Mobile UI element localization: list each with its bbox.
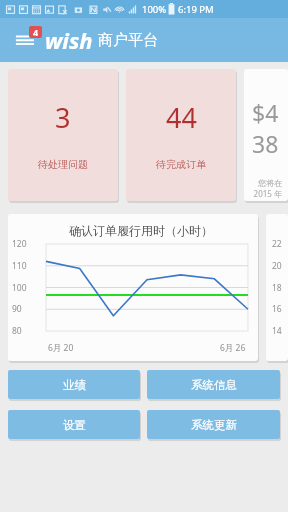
button[interactable]: 3	[8, 69, 118, 201]
staticText: 业绩	[63, 378, 86, 392]
button[interactable]: 设置	[8, 410, 140, 439]
staticText: 44	[166, 99, 197, 136]
staticText: 22	[272, 238, 282, 250]
staticText: 100%	[142, 3, 167, 16]
staticText: 20	[272, 260, 282, 272]
staticText: 3	[55, 99, 71, 136]
staticText: 90	[12, 303, 38, 315]
staticText: 80	[12, 325, 38, 337]
staticText: 系统更新	[191, 418, 237, 432]
staticText: 100	[12, 282, 38, 294]
button[interactable]: 确认订单履行用时（小时）	[8, 214, 258, 361]
staticText: 系统信息	[191, 378, 237, 392]
button[interactable]: Menu	[9, 23, 43, 57]
staticText: 4	[33, 26, 39, 38]
staticText: 18	[272, 282, 282, 294]
staticText: 110	[12, 260, 38, 272]
staticText: 您将在 2015 年 7 月 1 日收到下一笔付款	[252, 177, 282, 201]
staticText: wish	[45, 25, 93, 55]
staticText: 待完成订单	[156, 158, 206, 171]
staticText: 待处理问题	[38, 158, 88, 171]
staticText: 6月 20	[48, 342, 74, 354]
staticText: $438	[252, 97, 282, 159]
button[interactable]: 22	[266, 214, 288, 361]
staticText: 确认订单履行用时（小时）	[69, 223, 213, 238]
staticText: 16	[272, 303, 282, 315]
button[interactable]: 44	[126, 69, 236, 201]
staticText: 120	[12, 238, 38, 250]
button[interactable]: $438	[244, 69, 288, 201]
staticText: 商户平台	[98, 31, 158, 50]
button[interactable]: 业绩	[8, 370, 140, 399]
button[interactable]: 系统更新	[147, 410, 280, 439]
staticText: 6月 26	[220, 342, 246, 354]
staticText: 设置	[63, 418, 86, 432]
button[interactable]: 系统信息	[147, 370, 280, 399]
staticText: 14	[272, 325, 282, 337]
staticText: 6:19 PM	[178, 3, 214, 16]
